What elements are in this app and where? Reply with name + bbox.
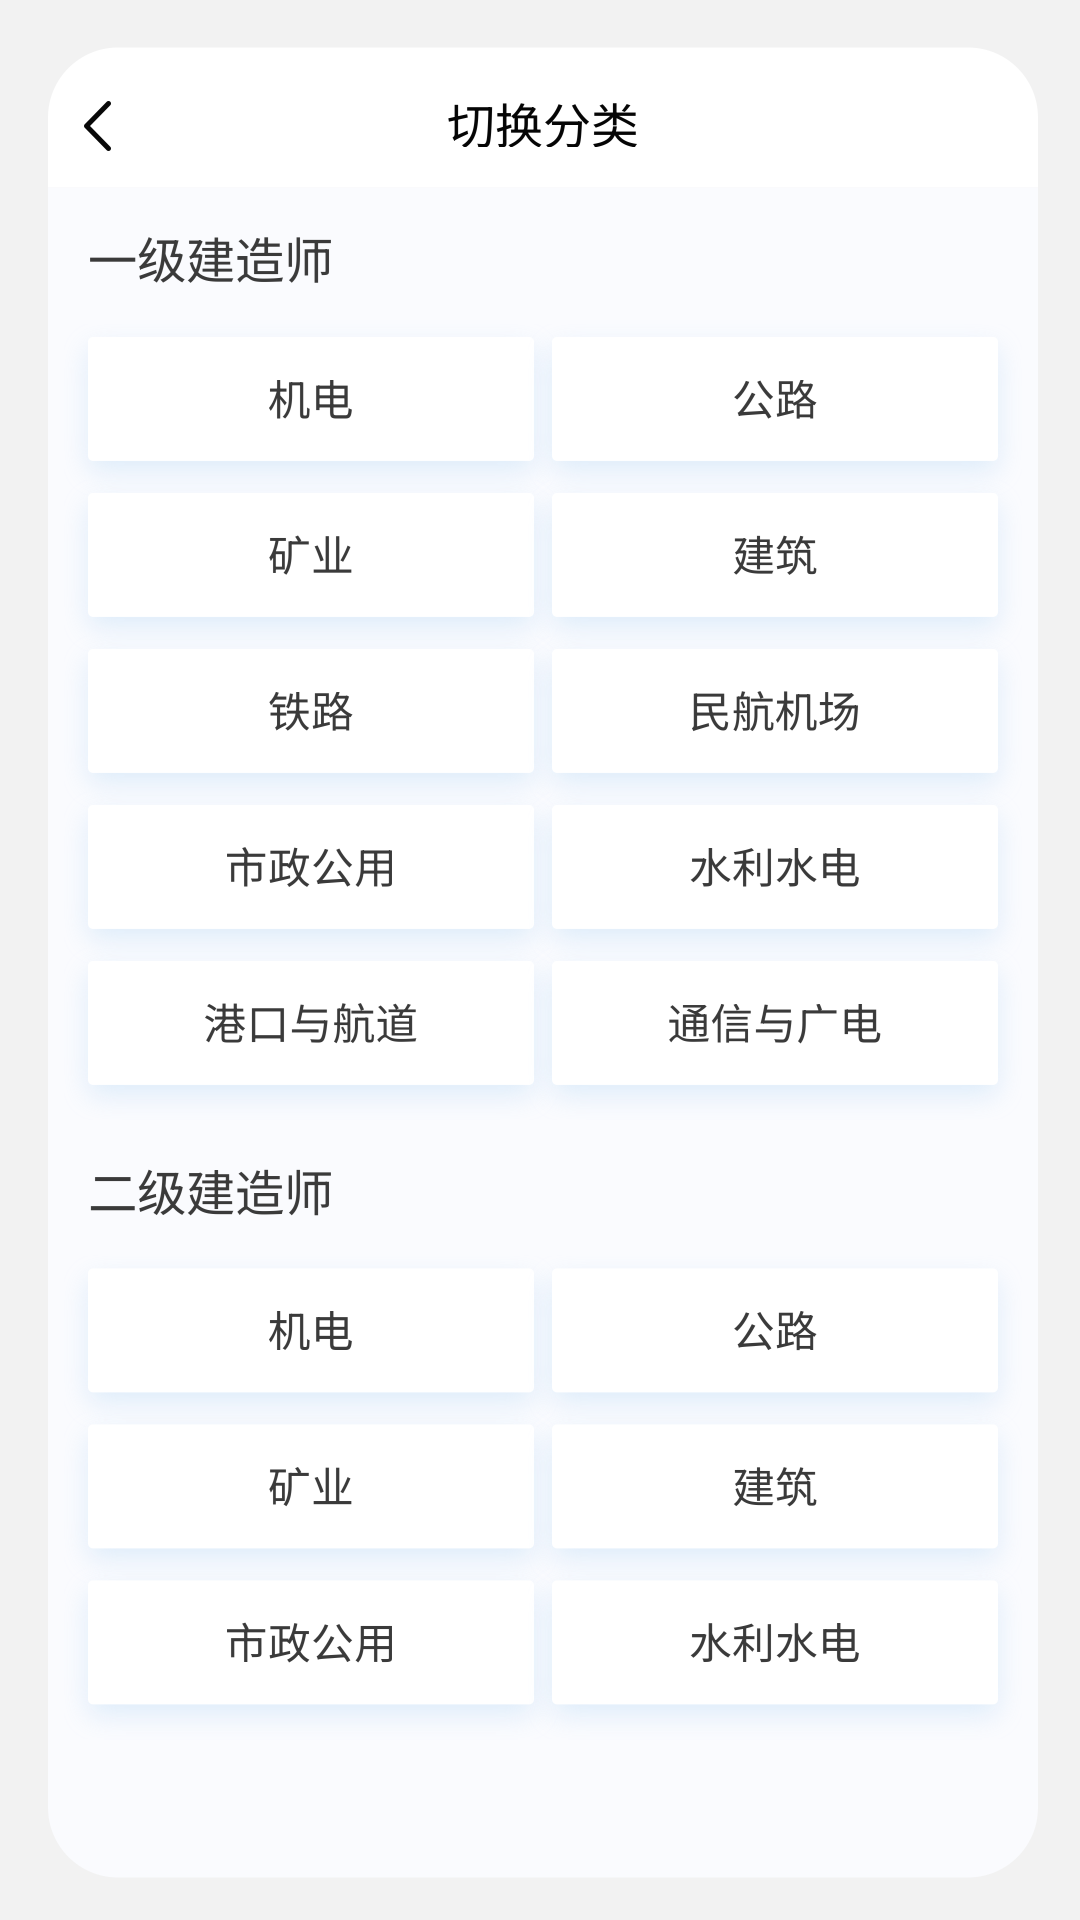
button[interactable]: 公路 [552, 337, 998, 461]
staticText: 二级建造师 [88, 1154, 333, 1225]
staticText: 矿业 [268, 1453, 354, 1515]
button[interactable]: 水利水电 [552, 805, 998, 929]
button[interactable]: 公路 [552, 1268, 998, 1392]
staticText: 公路 [732, 1297, 818, 1359]
staticText: 机电 [268, 366, 354, 428]
staticText: 公路 [732, 366, 818, 428]
button[interactable]: 建筑 [552, 1424, 998, 1548]
staticText: 矿业 [268, 522, 354, 584]
button[interactable]: 民航机场 [552, 649, 998, 773]
staticText: 机电 [268, 1297, 354, 1359]
staticText: 市政公用 [225, 1609, 397, 1671]
button[interactable]: 通信与广电 [552, 961, 998, 1085]
staticText: 切换分类 [447, 88, 639, 157]
button[interactable]: 矿业 [88, 1424, 534, 1548]
button[interactable]: 市政公用 [88, 805, 534, 929]
staticText: 建筑 [732, 522, 818, 584]
button[interactable]: 机电 [88, 337, 534, 461]
staticText: 一级建造师 [88, 221, 333, 293]
staticText: 市政公用 [225, 834, 397, 896]
button[interactable]: 机电 [88, 1268, 534, 1392]
button[interactable]: 市政公用 [88, 1580, 534, 1704]
button[interactable]: 水利水电 [552, 1580, 998, 1704]
button[interactable]: Back [48, 57, 131, 178]
button[interactable]: 建筑 [552, 493, 998, 617]
staticText: 铁路 [268, 678, 354, 740]
staticText: 水利水电 [689, 834, 861, 896]
staticText: 民航机场 [689, 678, 861, 740]
staticText: 建筑 [732, 1453, 818, 1515]
staticText: 港口与航道 [203, 990, 418, 1052]
staticText: 通信与广电 [667, 990, 882, 1052]
button[interactable]: 矿业 [88, 493, 534, 617]
staticText: 水利水电 [689, 1609, 861, 1671]
button[interactable]: 港口与航道 [88, 961, 534, 1085]
button[interactable]: 铁路 [88, 649, 534, 773]
